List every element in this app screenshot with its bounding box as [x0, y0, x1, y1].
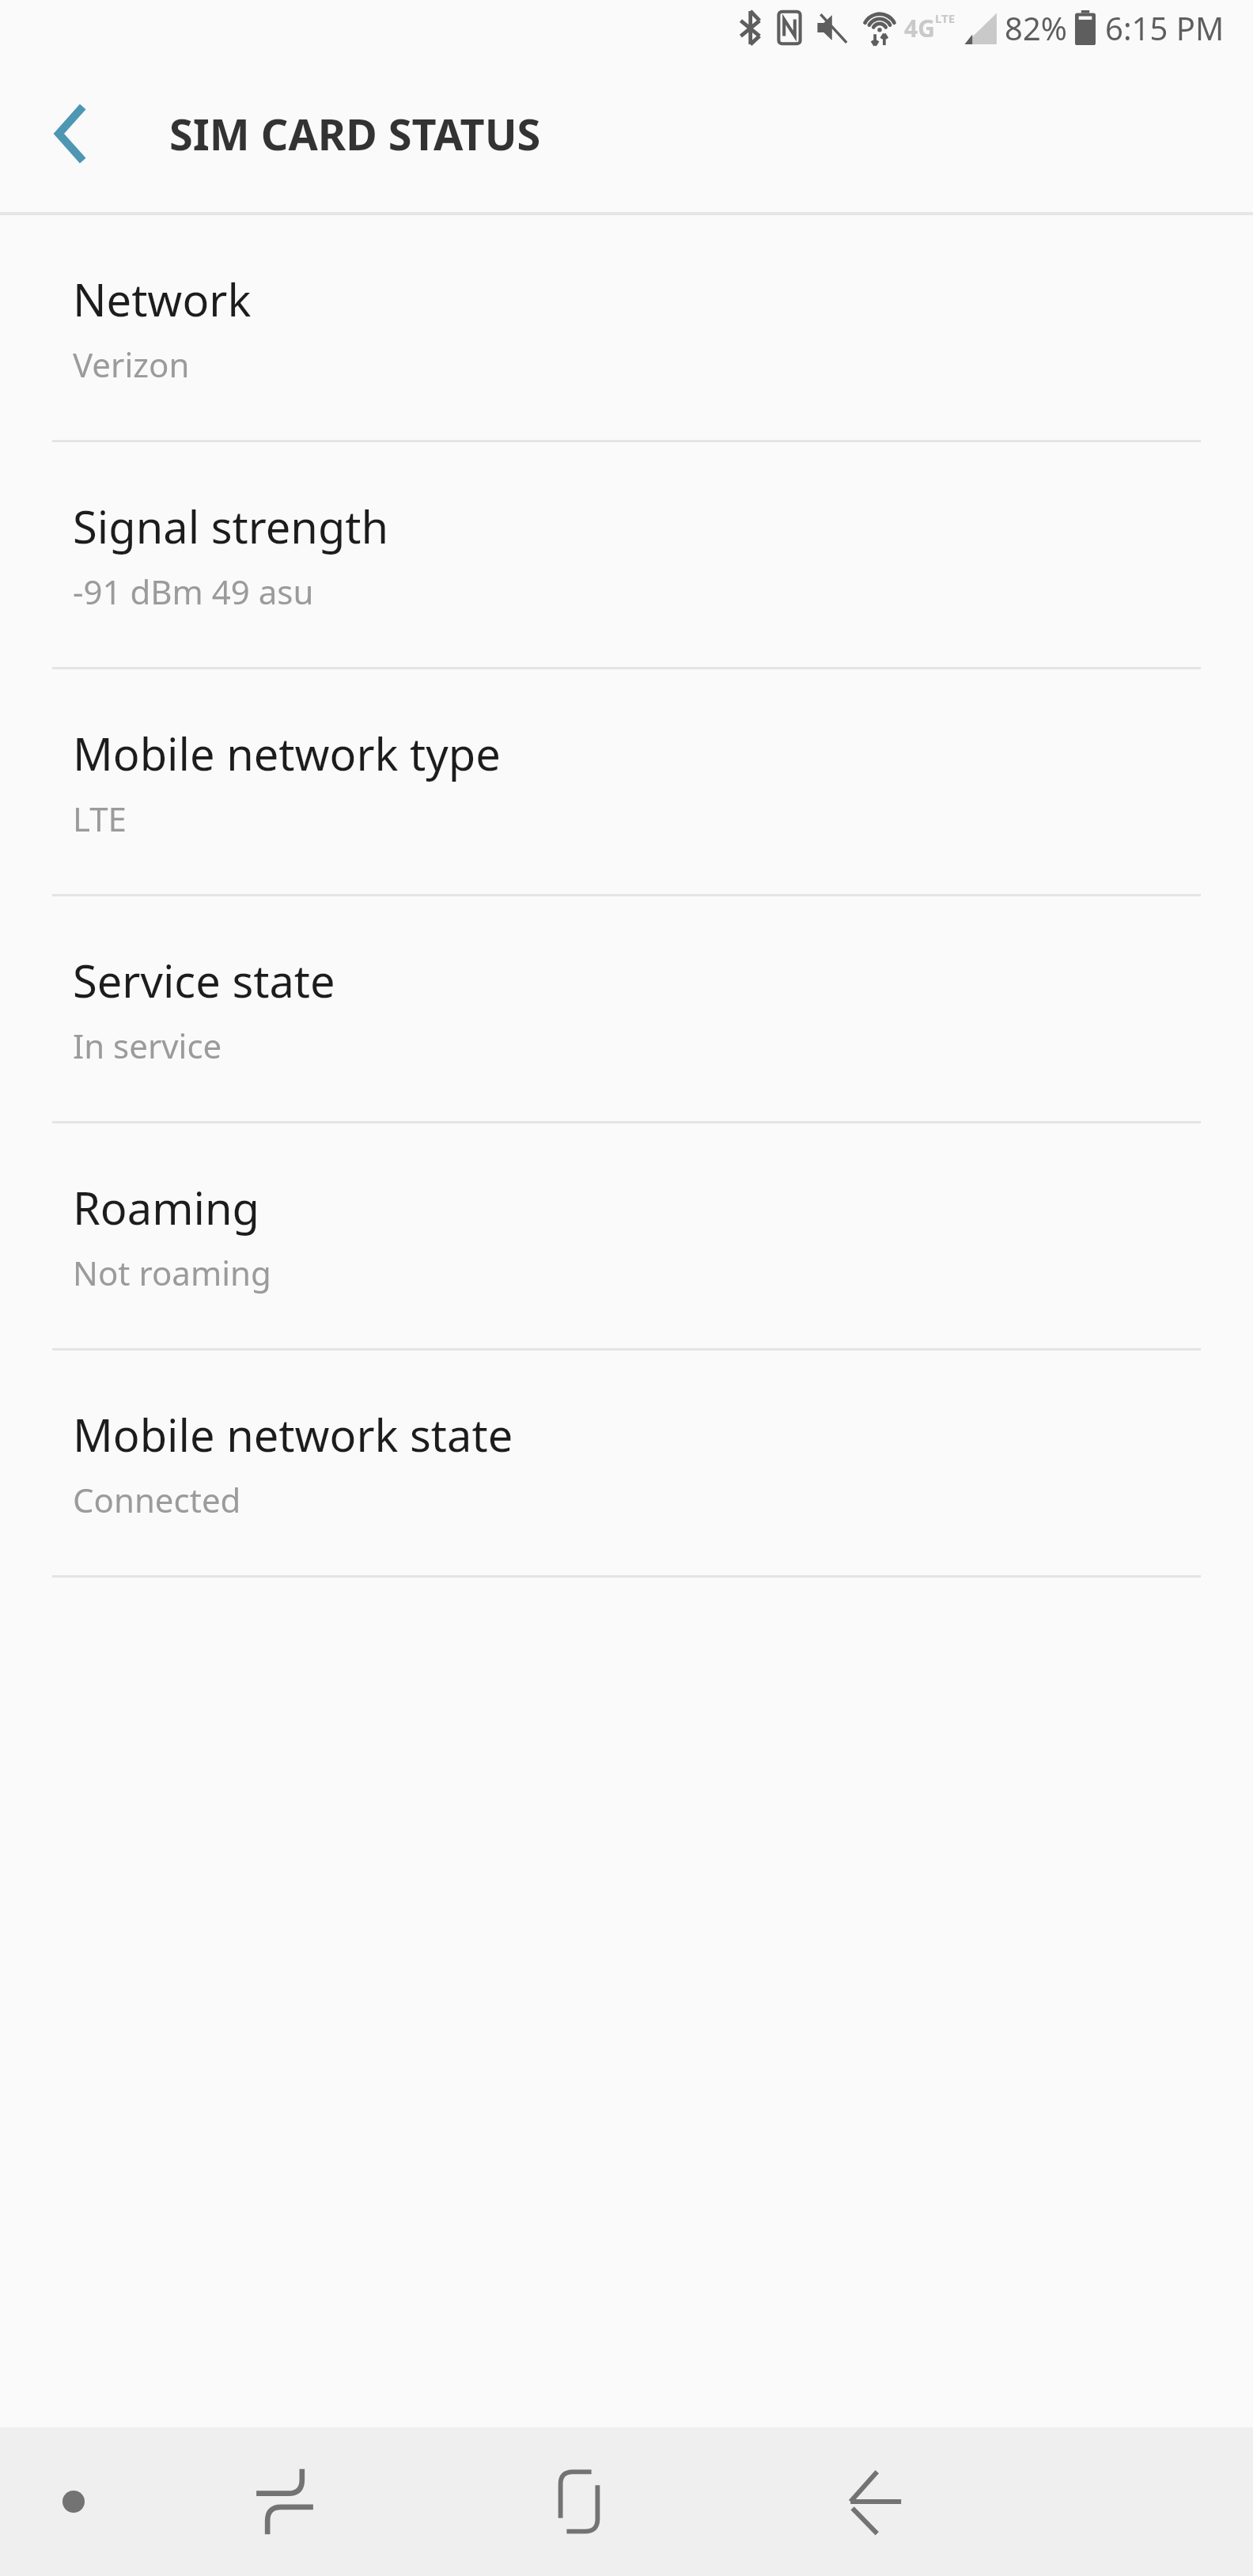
staticText: Verizon — [73, 342, 190, 387]
button[interactable]: Mobile network state — [0, 1351, 1253, 1575]
staticText: Connected — [73, 1477, 241, 1522]
button[interactable]: Navigate up — [19, 81, 123, 186]
staticText: 82% — [1005, 6, 1067, 49]
staticText: In service — [73, 1023, 222, 1068]
staticText: Service state — [73, 950, 335, 1010]
staticText: Mobile network type — [73, 723, 501, 783]
button[interactable]: Service state — [0, 896, 1253, 1121]
staticText: 4G — [904, 12, 935, 44]
staticText: LTE — [73, 796, 127, 841]
staticText: Network — [73, 269, 252, 329]
staticText: Roaming — [73, 1177, 259, 1237]
staticText: Mobile network state — [73, 1404, 513, 1464]
button[interactable]: Network — [0, 215, 1253, 440]
button[interactable]: Mobile network type — [0, 669, 1253, 894]
staticText: LTE — [935, 10, 956, 26]
staticText: 6:15 PM — [1105, 6, 1225, 49]
staticText: SIM CARD STATUS — [169, 104, 541, 163]
staticText: Signal strength — [73, 496, 389, 556]
button[interactable]: Back — [726, 2427, 1020, 2576]
button[interactable]: Signal strength — [0, 442, 1253, 667]
button[interactable]: Keyboard indicator — [24, 2452, 123, 2551]
button[interactable]: Recents — [138, 2427, 432, 2576]
staticText: Not roaming — [73, 1250, 271, 1295]
staticText: -91 dBm 49 asu — [73, 569, 314, 614]
button[interactable]: Home — [432, 2427, 726, 2576]
button[interactable]: Roaming — [0, 1123, 1253, 1348]
